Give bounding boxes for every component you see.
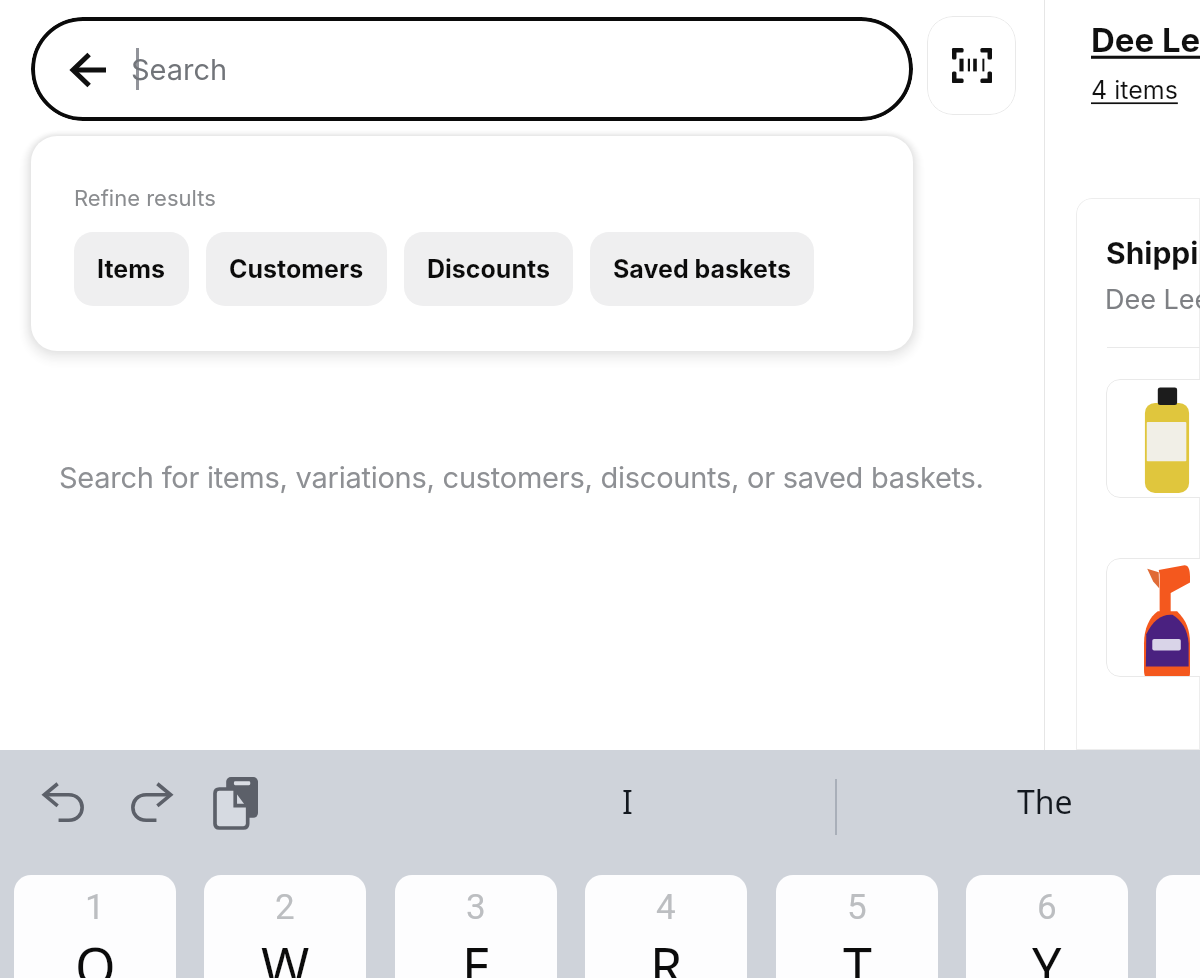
staticText: 6 (1037, 887, 1057, 928)
staticText: R (650, 930, 683, 978)
staticText: Discounts (427, 254, 550, 284)
button[interactable]: Redo (118, 770, 182, 834)
button[interactable]: 4 (585, 875, 747, 978)
button[interactable]: Undo (33, 770, 97, 834)
staticText: The (1017, 780, 1073, 824)
staticText: I (622, 780, 633, 824)
staticText: Refine results (74, 185, 216, 212)
button[interactable]: Shampoo line item (1106, 379, 1200, 498)
staticText: Saved baskets (613, 254, 791, 284)
staticText: Dee Le (1091, 20, 1200, 60)
button[interactable]: Items (74, 232, 189, 306)
button[interactable]: I (420, 762, 835, 842)
button[interactable]: The (837, 762, 1200, 842)
staticText: 4 (656, 887, 676, 928)
staticText: 4 items (1091, 75, 1178, 105)
staticText: Shippin (1106, 235, 1200, 271)
button[interactable]: 6 (966, 875, 1128, 978)
staticText: 5 (847, 887, 867, 928)
staticText: E (462, 930, 491, 978)
button[interactable]: Back (31, 17, 913, 121)
button[interactable]: Discounts (404, 232, 573, 306)
staticText: T (843, 930, 872, 978)
staticText: Search for items, variations, customers,… (59, 460, 984, 495)
button[interactable]: Dee Le (1091, 20, 1200, 60)
button[interactable]: 2 (204, 875, 366, 978)
button[interactable]: Saved baskets (590, 232, 814, 306)
button[interactable]: 7 (1156, 875, 1200, 978)
button[interactable]: Scan barcode (927, 16, 1016, 115)
button[interactable]: 4 items (1091, 75, 1178, 105)
staticText: Dee Lee (1105, 283, 1200, 316)
button[interactable]: Back (47, 43, 132, 95)
button[interactable]: Clipboard (202, 770, 266, 834)
staticText: 3 (466, 887, 486, 928)
staticText: Y (1032, 930, 1062, 978)
staticText: W (261, 930, 310, 978)
button[interactable]: 5 (776, 875, 938, 978)
staticText: 1 (85, 887, 105, 928)
button[interactable]: Spray cleaner line item (1106, 558, 1200, 677)
staticText: Q (75, 930, 116, 978)
button[interactable]: Customers (206, 232, 387, 306)
button[interactable]: 3 (395, 875, 557, 978)
button[interactable]: 1 (14, 875, 176, 978)
staticText: Items (97, 254, 166, 284)
staticText: Search (131, 52, 228, 87)
staticText: 2 (275, 887, 295, 928)
staticText: Customers (229, 254, 364, 284)
